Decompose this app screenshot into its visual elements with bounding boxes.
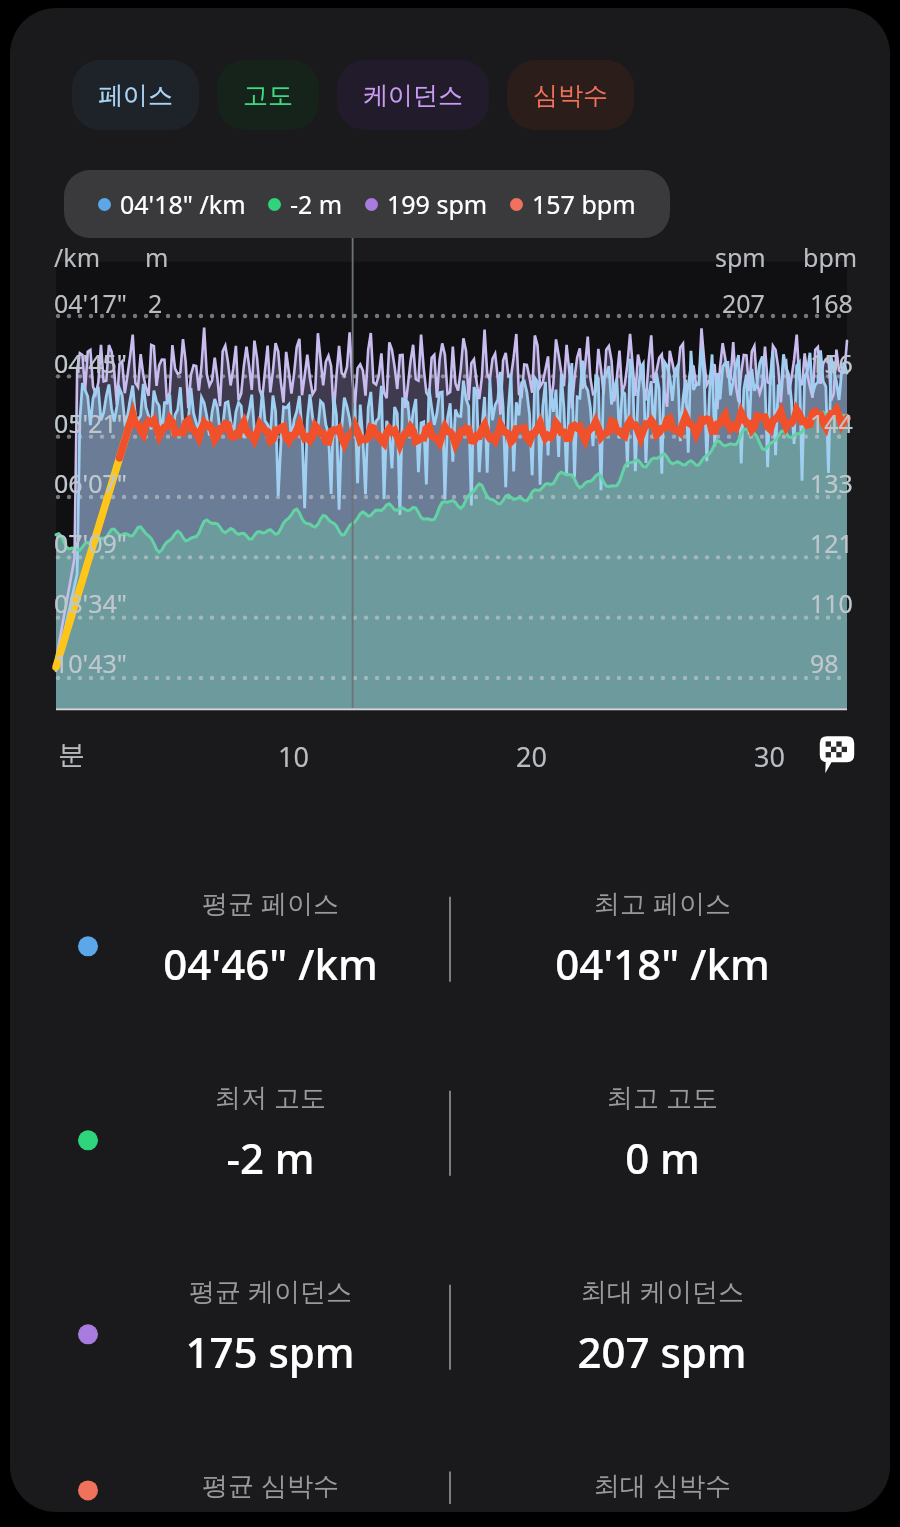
button[interactable]: 케이던스 [337,60,489,130]
staticText: 20 [516,738,547,775]
staticText: 168 [810,286,853,320]
staticText: 04'18" /km [555,935,770,992]
staticText: 최저 고도 [215,1079,326,1115]
staticText: 121 [810,526,853,560]
staticText: 133 [810,466,853,500]
button[interactable]: 페이스 [72,60,199,130]
staticText: 0 m [625,1129,700,1186]
staticText: 06'07" [54,466,128,500]
staticText: bpm [803,240,858,274]
staticText: 10'43" [54,646,128,680]
staticText: -2 m [226,1129,315,1186]
staticText: 199 spm [387,187,488,221]
button[interactable]: 평균 페이스 [10,885,890,1003]
staticText: 평균 심박수 [202,1467,339,1503]
button[interactable]: 최저 고도 [10,1079,890,1197]
staticText: spm [715,240,766,274]
staticText: 175 spm [185,1323,355,1380]
button[interactable]: 고도 [217,60,319,130]
staticText: 144 [810,406,853,440]
staticText: 04'46" /km [163,935,378,992]
staticText: 최대 케이던스 [581,1273,744,1309]
button[interactable]: 평균 케이던스 [10,1273,890,1391]
staticText: 최고 고도 [607,1079,718,1115]
staticText: 04'17" [54,286,128,320]
staticText: 분 [58,738,85,772]
staticText: -2 m [290,187,343,221]
staticText: 30 [754,738,785,775]
staticText: 04'18" /km [120,187,246,221]
staticText: 04'45" [54,346,128,380]
staticText: 207 spm [577,1323,747,1380]
staticText: 157 bpm [532,187,636,221]
button[interactable]: 04'18" /km [64,170,670,238]
staticText: 심박수 [533,80,608,111]
staticText: /km [54,240,101,274]
staticText: 케이던스 [363,80,463,111]
staticText: 최고 페이스 [594,885,731,921]
staticText: 고도 [243,80,293,111]
staticText: 평균 페이스 [202,885,339,921]
staticText: 98 [810,646,839,680]
staticText: 07'09" [54,526,128,560]
staticText: m [145,240,169,274]
staticText: 2 [148,286,163,320]
staticText: 08'34" [54,586,128,620]
button[interactable]: 평균 심박수 [10,1467,890,1512]
staticText: 평균 케이던스 [189,1273,352,1309]
staticText: 156 [810,346,853,380]
staticText: 10 [278,738,309,775]
staticText: 207 [722,286,765,320]
other: Finish [816,732,858,774]
staticText: 05'21" [54,406,128,440]
button[interactable]: 심박수 [507,60,634,130]
staticText: 110 [810,586,853,620]
staticText: 페이스 [98,80,173,111]
staticText: 최대 심박수 [594,1467,731,1503]
